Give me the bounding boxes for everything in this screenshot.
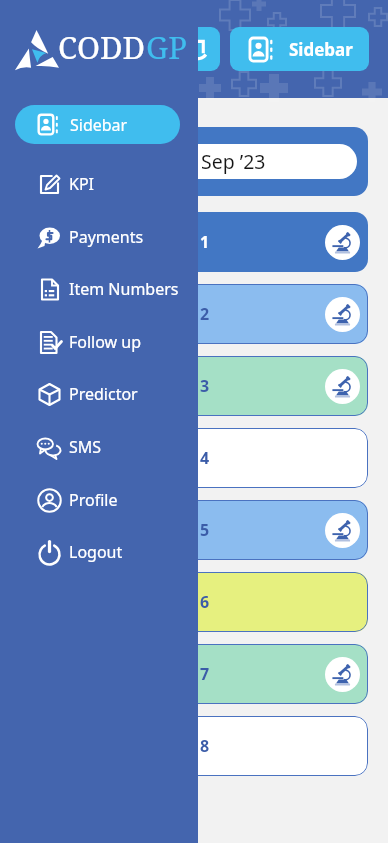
button[interactable]: Follow up bbox=[22, 321, 198, 363]
button[interactable]: 4 bbox=[20, 428, 368, 488]
button[interactable]: SMS bbox=[22, 426, 198, 468]
staticText: Item Numbers bbox=[69, 278, 179, 300]
staticText: SMS bbox=[69, 436, 102, 458]
button[interactable]: 6 bbox=[20, 572, 368, 632]
staticText: Profile bbox=[69, 489, 118, 511]
staticText: 7 bbox=[200, 663, 210, 685]
button[interactable]: 1 bbox=[20, 212, 368, 272]
staticText: 5 bbox=[200, 519, 210, 541]
staticText: 1 bbox=[200, 231, 210, 253]
button[interactable]: Predictor bbox=[22, 373, 198, 415]
staticText: 8 bbox=[200, 735, 210, 757]
button[interactable]: Logout bbox=[22, 531, 198, 573]
button[interactable]: 3 bbox=[20, 356, 368, 416]
button[interactable]: 8 bbox=[20, 716, 368, 776]
button[interactable]: 5 bbox=[20, 500, 368, 560]
staticText: 3 bbox=[200, 375, 210, 397]
button[interactable]: Lab results bbox=[325, 369, 360, 404]
button[interactable]: Profile bbox=[22, 479, 198, 521]
staticText: 4 bbox=[200, 447, 210, 469]
button[interactable]: Sidebar bbox=[15, 105, 180, 144]
staticText: GP bbox=[146, 26, 187, 66]
button[interactable]: Lab results bbox=[325, 513, 360, 548]
staticText: 2 bbox=[200, 303, 210, 325]
button[interactable]: 2 bbox=[20, 284, 368, 344]
button[interactable]: Refresh bbox=[176, 27, 220, 71]
staticText: Logout bbox=[69, 541, 123, 563]
button[interactable]: Lab results bbox=[325, 297, 360, 332]
staticText: Sep ’23 bbox=[201, 148, 266, 175]
button[interactable]: Item Numbers bbox=[22, 268, 198, 310]
button[interactable]: 7 bbox=[20, 644, 368, 704]
staticText: KPI bbox=[69, 173, 95, 195]
button[interactable]: KPI bbox=[22, 163, 198, 205]
button[interactable]: Payments bbox=[22, 216, 198, 258]
button[interactable]: Sep ’23 bbox=[20, 127, 368, 196]
staticText: Follow up bbox=[69, 331, 142, 353]
staticText: CODD bbox=[58, 26, 146, 66]
staticText: 6 bbox=[200, 591, 210, 613]
staticText: Payments bbox=[69, 226, 144, 248]
staticText: Sidebar bbox=[289, 38, 353, 61]
button[interactable]: Lab results bbox=[325, 657, 360, 692]
button[interactable]: Lab results bbox=[325, 225, 360, 260]
button[interactable]: Sidebar bbox=[230, 27, 369, 71]
staticText: Sidebar bbox=[70, 114, 128, 136]
staticText: Predictor bbox=[69, 383, 138, 405]
